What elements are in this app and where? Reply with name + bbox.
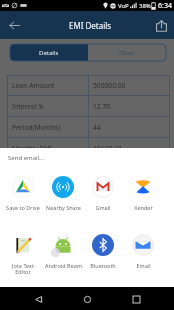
staticText: Period(Months) (12, 123, 61, 132)
button[interactable]: Bluetooth (83, 234, 123, 269)
button[interactable]: Recents (125, 288, 147, 310)
button[interactable]: Share (152, 16, 170, 34)
staticText: 12.70 (93, 102, 111, 111)
staticText: Email (136, 262, 151, 269)
staticText: 44 (93, 123, 101, 132)
staticText: Android Beam (45, 262, 82, 269)
staticText: 500000.00 (93, 81, 126, 90)
staticText: Save to Drive (6, 204, 40, 211)
button[interactable]: Home (76, 288, 98, 310)
staticText: Nearby Share (46, 204, 81, 211)
button[interactable]: Save to Drive (3, 176, 43, 211)
staticText: 6:34 (158, 1, 172, 11)
staticText: Details (39, 49, 59, 57)
button[interactable]: Nearby Share (43, 176, 83, 211)
staticText: Gmail (95, 204, 111, 211)
staticText: VoP (118, 2, 129, 10)
button[interactable]: Gmail (83, 176, 123, 211)
button[interactable]: Details (10, 44, 88, 61)
button[interactable]: Chart (88, 44, 166, 61)
staticText: Loan Amount (12, 81, 55, 90)
staticText: Xender (134, 204, 153, 211)
staticText: Send email... (8, 154, 44, 162)
staticText: Interest % (12, 102, 44, 111)
button[interactable]: Android Beam (43, 234, 83, 269)
button[interactable]: Back (6, 17, 23, 34)
button[interactable]: Email (123, 234, 163, 269)
staticText: Bluetooth (90, 262, 116, 269)
staticText: 13137.23 (93, 144, 122, 153)
staticText: Jota Text Editor (12, 262, 34, 276)
button[interactable]: Xender (123, 176, 163, 211)
staticText: Monthly EMI (12, 144, 52, 153)
button[interactable]: Back (27, 288, 49, 310)
staticText: Chart (119, 49, 135, 57)
button[interactable]: Jota Text Editor (3, 234, 43, 276)
staticText: 38% (139, 2, 151, 10)
staticText: EMI Details (69, 20, 112, 31)
